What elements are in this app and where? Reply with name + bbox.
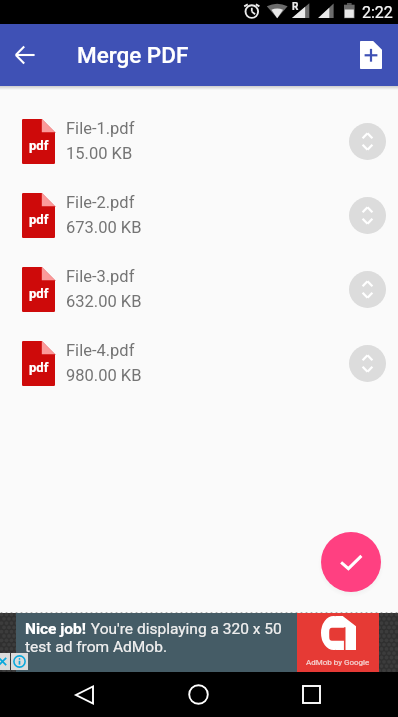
staticText: test ad from AdMob. <box>25 638 168 656</box>
button[interactable]: Reorder file <box>349 345 386 382</box>
button[interactable]: Recent apps <box>283 672 340 717</box>
staticText: You're displaying a 320 x 50 <box>87 620 282 638</box>
staticText: pdf <box>29 138 49 153</box>
staticText: File-4.pdf <box>66 341 135 360</box>
button[interactable]: Reorder file <box>349 197 386 234</box>
staticText: pdf <box>29 212 49 227</box>
button[interactable]: Reorder file <box>349 271 386 308</box>
staticText: pdf <box>29 286 49 301</box>
staticText: Merge PDF <box>77 42 189 68</box>
staticText: R <box>292 1 299 13</box>
staticText: File-2.pdf <box>66 193 135 212</box>
button[interactable]: pdf <box>0 326 398 400</box>
staticText: 632.00 KB <box>66 292 142 311</box>
staticText: File-1.pdf <box>66 119 135 138</box>
button[interactable]: Merge <box>321 532 381 592</box>
button[interactable]: pdf <box>0 104 398 178</box>
staticText: 673.00 KB <box>66 218 142 237</box>
button[interactable]: Reorder file <box>349 123 386 160</box>
staticText: 980.00 KB <box>66 366 142 385</box>
button[interactable]: pdf <box>0 178 398 252</box>
button[interactable]: pdf <box>0 252 398 326</box>
staticText: File-3.pdf <box>66 267 135 286</box>
button[interactable]: Back <box>56 672 113 717</box>
button[interactable]: Back <box>5 35 45 75</box>
button[interactable]: Add file <box>351 35 391 75</box>
staticText: Nice job! <box>25 620 87 638</box>
staticText: pdf <box>29 360 49 375</box>
button[interactable]: Close ad <box>0 653 10 670</box>
staticText: 15.00 KB <box>66 144 133 163</box>
staticText: 2:22 <box>362 3 393 22</box>
button[interactable]: Ad information <box>11 653 28 670</box>
button[interactable]: Home <box>170 672 227 717</box>
staticText: AdMob by Google <box>306 658 370 667</box>
